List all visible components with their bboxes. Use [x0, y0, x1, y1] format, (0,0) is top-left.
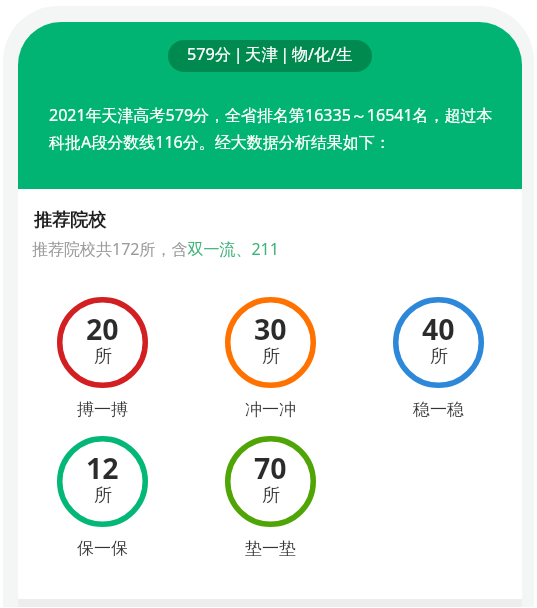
staticText: 2021年天津高考579分，全省排名第16335～16541名，超过本科批A段分…: [49, 104, 494, 153]
staticText: 垫一垫: [245, 538, 296, 559]
staticText: 所: [94, 345, 112, 368]
button[interactable]: 579分 | 天津 | 物/化/生: [168, 40, 372, 72]
staticText: 所: [262, 484, 280, 507]
button[interactable]: 20: [18, 297, 186, 420]
staticText: 所: [430, 345, 448, 368]
button[interactable]: 30: [186, 297, 354, 420]
staticText: 所: [94, 484, 112, 507]
button[interactable]: 40: [354, 297, 522, 420]
staticText: 70: [254, 449, 287, 488]
button[interactable]: 推荐院校共172所，含双一流、211: [32, 238, 279, 260]
staticText: 579分 | 天津 | 物/化/生: [187, 43, 353, 65]
staticText: 冲一冲: [245, 399, 296, 420]
staticText: 保一保: [77, 538, 128, 559]
staticText: 所: [262, 345, 280, 368]
button[interactable]: 70: [186, 436, 354, 559]
staticText: 推荐院校共172所，含双一流、211: [32, 238, 279, 260]
staticText: 40: [422, 310, 455, 349]
staticText: 稳一稳: [413, 399, 464, 420]
staticText: 20: [86, 310, 119, 349]
staticText: 推荐院校: [34, 209, 106, 232]
staticText: 搏一搏: [77, 399, 128, 420]
button[interactable]: 12: [18, 436, 186, 559]
staticText: 30: [254, 310, 287, 349]
staticText: 12: [86, 449, 119, 488]
